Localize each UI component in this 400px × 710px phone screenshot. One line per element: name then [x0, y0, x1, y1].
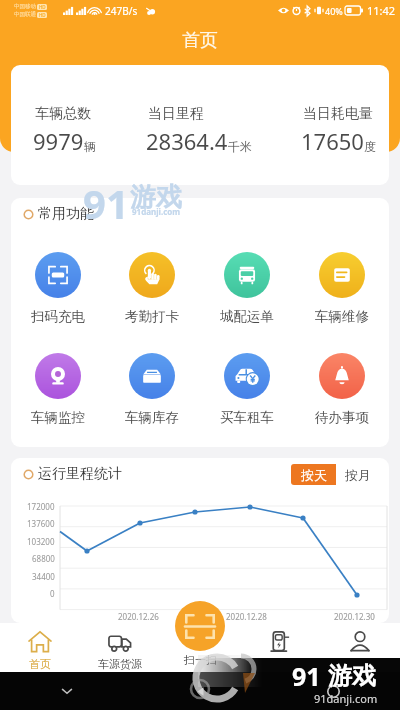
staticText: 车辆总数	[35, 105, 91, 123]
staticText: 车辆库存	[125, 409, 179, 426]
staticText: 按月	[345, 467, 371, 483]
button[interactable]: 考勤打卡	[105, 252, 199, 325]
button[interactable]: 充电桩	[240, 623, 320, 672]
button[interactable]: 扫一扫	[160, 623, 240, 672]
button[interactable]: 扫一扫	[175, 601, 225, 651]
staticText: 买车租车	[220, 409, 274, 426]
staticText: 2020.12.30	[334, 611, 375, 622]
staticText: 2020.12.26	[118, 611, 159, 622]
staticText: 常用功能	[38, 205, 94, 223]
staticText: 0	[50, 588, 55, 599]
staticText: 91	[292, 659, 321, 693]
staticText: 34400	[32, 571, 55, 582]
button[interactable]: 车源货源	[80, 623, 160, 672]
staticText: 度	[364, 139, 376, 154]
button[interactable]: 车辆库存	[105, 353, 199, 426]
staticText: 中国联通	[14, 11, 36, 18]
staticText: 扫码充电	[31, 308, 85, 325]
staticText: 9979	[33, 126, 84, 156]
staticText: 103200	[27, 536, 55, 547]
staticText: 137600	[27, 518, 55, 529]
button[interactable]: 扫码充电	[11, 252, 105, 325]
staticText: 91	[83, 176, 129, 230]
staticText: 17650	[301, 126, 364, 156]
button[interactable]: 首页	[0, 623, 80, 672]
staticText: 城配运单	[220, 308, 274, 325]
button[interactable]: 车辆监控	[11, 353, 105, 426]
staticText: HD	[39, 4, 46, 10]
staticText: 40%	[325, 5, 343, 17]
staticText: 待办事项	[315, 409, 369, 426]
staticText: 中国移动	[14, 3, 36, 10]
staticText: 游戏	[130, 181, 182, 214]
staticText: 游戏	[328, 661, 376, 691]
staticText: 2020.12.28	[226, 611, 267, 622]
button[interactable]: 按月	[336, 464, 380, 485]
button[interactable]: 我的	[320, 623, 400, 672]
staticText: 首页	[29, 657, 51, 671]
staticText: 车辆维修	[315, 308, 369, 325]
staticText: 充电桩	[264, 657, 297, 671]
staticText: 千米	[228, 139, 252, 154]
staticText: 扫一扫	[184, 653, 217, 667]
button[interactable]: 买车租车	[199, 353, 294, 426]
staticText: 首页	[182, 29, 218, 52]
button[interactable]: 待办事项	[294, 353, 389, 426]
staticText: 247B/s	[105, 4, 138, 18]
staticText: 172000	[27, 501, 55, 512]
button[interactable]: 按天	[291, 464, 336, 485]
staticText: 68800	[32, 553, 55, 564]
staticText: 28364.4	[146, 126, 228, 156]
staticText: 我的	[349, 657, 371, 671]
staticText: 车源货源	[98, 657, 142, 671]
staticText: 11:42	[367, 3, 396, 18]
staticText: 当日耗电量	[303, 105, 373, 123]
staticText: 车辆监控	[31, 409, 85, 426]
staticText: 当日里程	[148, 105, 204, 123]
staticText: 91danji.com	[132, 206, 181, 217]
staticText: 91danji.com	[314, 691, 378, 706]
staticText: 考勤打卡	[125, 308, 179, 325]
staticText: HD	[39, 12, 46, 18]
button[interactable]: 车辆维修	[294, 252, 389, 325]
staticText: 辆	[84, 139, 96, 154]
staticText: 按天	[301, 467, 327, 483]
button[interactable]: 城配运单	[199, 252, 294, 325]
staticText: 运行里程统计	[38, 465, 122, 483]
